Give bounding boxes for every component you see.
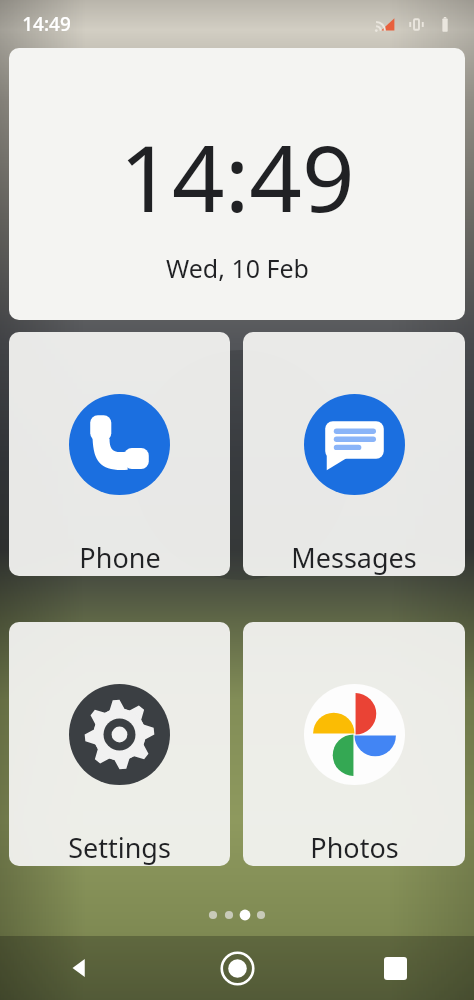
button[interactable]: Recent apps [316,936,474,1000]
button[interactable]: Phone [9,332,230,576]
other: Messages [304,394,405,495]
other: Photos [304,684,405,785]
button[interactable]: Messages [243,332,465,576]
staticText: Photos [310,829,399,866]
staticText: 14:49 [22,11,71,37]
other: Phone [69,394,170,495]
button[interactable]: Photos [243,622,465,866]
other: Settings [69,684,170,785]
staticText: 14:49 [119,114,355,239]
staticText: Phone [79,539,161,576]
staticText: Messages [291,539,417,576]
button[interactable]: Home [158,936,316,1000]
button[interactable]: Back [0,936,158,1000]
button[interactable]: 14:49 [9,48,465,320]
staticText: Settings [68,829,171,866]
button[interactable]: Settings [9,622,230,866]
staticText: Wed, 10 Feb [166,251,309,285]
